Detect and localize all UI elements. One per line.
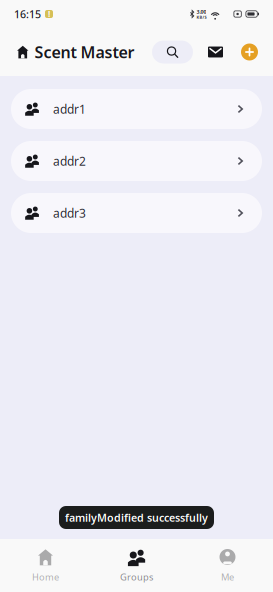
button[interactable]: Add group [241, 43, 258, 60]
staticText: 3.00 [196, 8, 206, 15]
staticText: Me [221, 571, 234, 583]
staticText: familyModified successfully [65, 510, 208, 525]
staticText: addr1 [53, 101, 86, 117]
button[interactable]: addr3 [11, 193, 262, 233]
staticText: Groups [120, 571, 153, 583]
button[interactable]: Home [0, 539, 91, 592]
button[interactable]: Me [182, 539, 273, 592]
staticText: 16:15 [14, 7, 41, 21]
staticText: Scent Master [34, 41, 134, 63]
staticText: Home [32, 571, 59, 583]
staticText: KB/S [196, 15, 206, 20]
button[interactable]: Messages [208, 40, 223, 63]
staticText: addr3 [53, 205, 86, 221]
button[interactable]: addr1 [11, 89, 262, 129]
button[interactable]: addr2 [11, 141, 262, 181]
staticText: addr2 [53, 153, 86, 169]
button[interactable]: Search [152, 40, 193, 63]
button[interactable]: Groups [91, 539, 182, 592]
staticText: ! [48, 9, 50, 19]
